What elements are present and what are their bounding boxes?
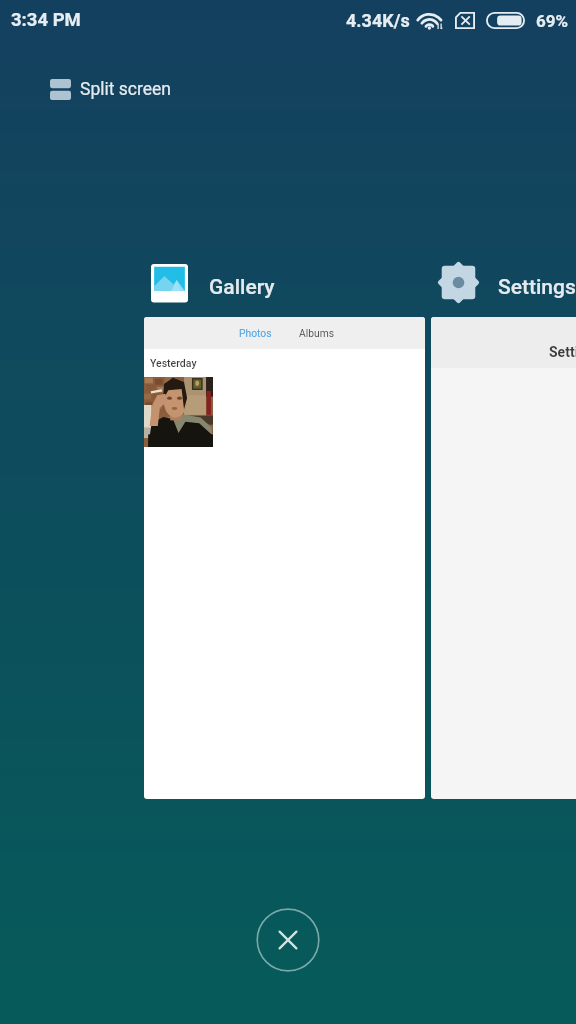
staticText: Settings [549,344,576,360]
button[interactable]: Settings recent task [431,317,576,799]
staticText: Gallery [209,275,275,300]
button[interactable]: Split screen [44,75,181,104]
staticText: Split screen [80,79,171,100]
button[interactable]: Albums [299,327,335,339]
button[interactable]: Photos [239,327,272,339]
button[interactable]: Close all apps [256,908,320,972]
button[interactable]: Gallery recent task [144,317,425,799]
button[interactable]: Settings [431,260,576,305]
staticText: 3:34 PM [11,9,81,31]
button[interactable]: Gallery [144,260,275,305]
staticText: Settings [498,275,576,300]
staticText: 4.34K/s [346,10,410,31]
staticText: 69% [536,11,569,31]
staticText: Yesterday [150,357,197,369]
